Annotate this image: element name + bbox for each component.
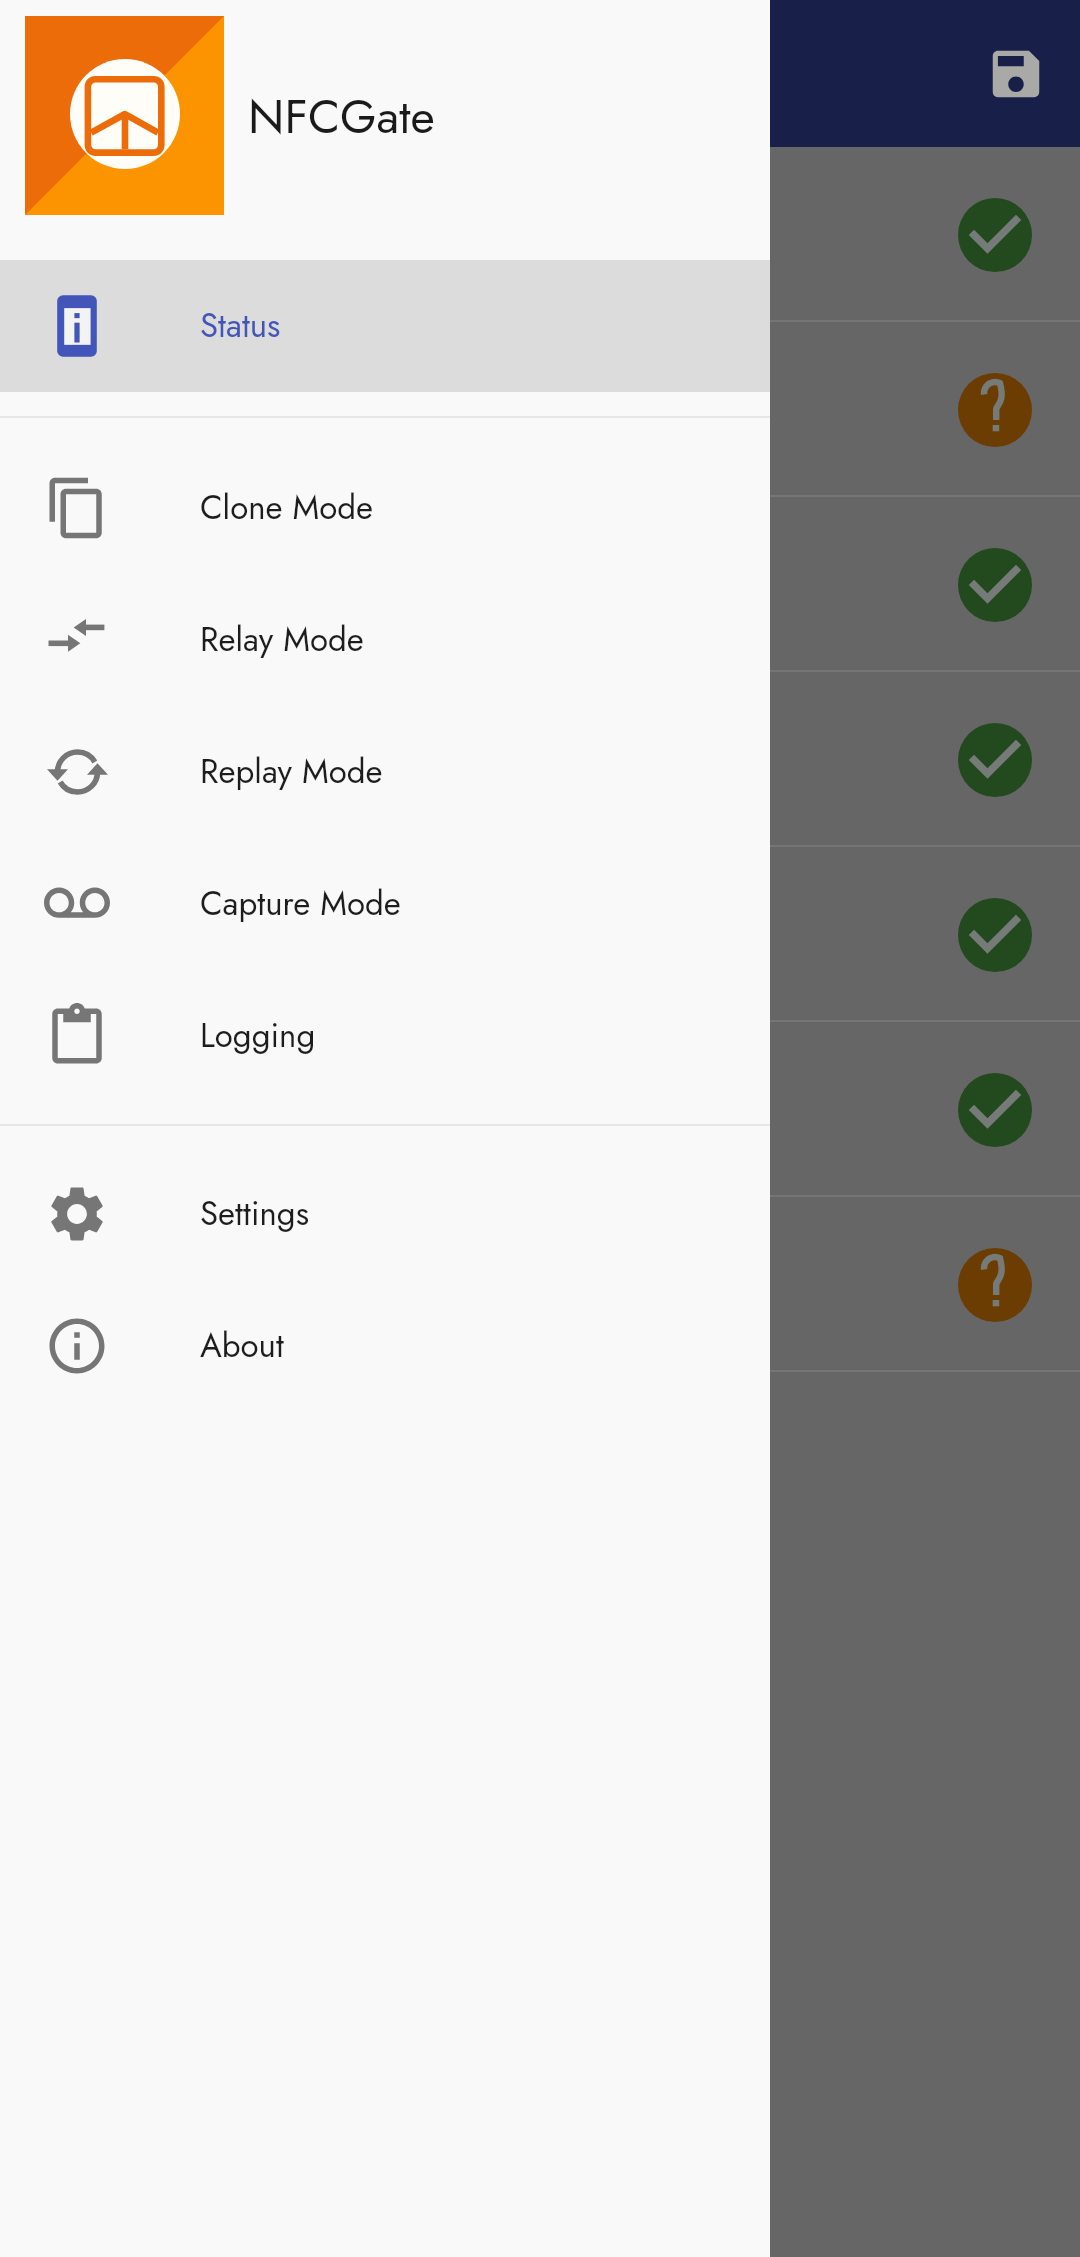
- button[interactable]: Relay Mode: [0, 574, 770, 706]
- staticText: Clone Mode: [200, 484, 373, 532]
- staticText: Status: [200, 302, 281, 350]
- button[interactable]: Settings: [0, 1148, 770, 1280]
- staticText: Capture Mode: [200, 880, 401, 928]
- staticText: About: [200, 1322, 284, 1370]
- button[interactable]: OK: [0, 147, 1080, 322]
- button[interactable]: OK: [958, 198, 1032, 272]
- staticText: NFCGate: [248, 83, 435, 151]
- button[interactable]: Unknown: [958, 1248, 1032, 1322]
- button[interactable]: Unknown: [0, 322, 1080, 497]
- button[interactable]: Logging: [0, 970, 770, 1102]
- staticText: Replay Mode: [200, 748, 383, 796]
- staticText: Relay Mode: [200, 616, 364, 664]
- button[interactable]: OK: [0, 847, 1080, 1022]
- button[interactable]: Status: [0, 260, 770, 392]
- button[interactable]: Clone Mode: [0, 442, 770, 574]
- button[interactable]: Unknown: [0, 1197, 1080, 1372]
- button[interactable]: OK: [0, 497, 1080, 672]
- button[interactable]: OK: [0, 672, 1080, 847]
- staticText: Logging: [200, 1012, 316, 1060]
- button[interactable]: Capture Mode: [0, 838, 770, 970]
- button[interactable]: OK: [958, 548, 1032, 622]
- button[interactable]: OK: [0, 1022, 1080, 1197]
- button[interactable]: OK: [958, 898, 1032, 972]
- button[interactable]: Replay Mode: [0, 706, 770, 838]
- button[interactable]: About: [0, 1280, 770, 1412]
- button[interactable]: Unknown: [958, 373, 1032, 447]
- button[interactable]: OK: [958, 1073, 1032, 1147]
- button[interactable]: OK: [958, 723, 1032, 797]
- button[interactable]: Save: [968, 26, 1064, 122]
- staticText: Settings: [200, 1190, 309, 1238]
